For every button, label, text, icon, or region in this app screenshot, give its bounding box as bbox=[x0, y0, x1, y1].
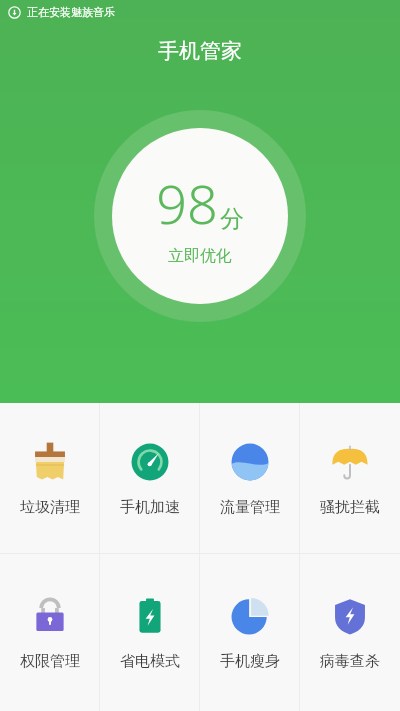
staticText: 骚扰拦截 bbox=[320, 498, 380, 517]
staticText: 垃圾清理 bbox=[20, 498, 80, 517]
staticText: 分 bbox=[220, 204, 244, 234]
staticText: 权限管理 bbox=[20, 652, 80, 671]
button[interactable]: 手机瘦身 bbox=[200, 554, 300, 711]
staticText: 流量管理 bbox=[220, 498, 280, 517]
button[interactable]: 流量管理 bbox=[200, 403, 300, 553]
staticText: 手机管家 bbox=[158, 38, 242, 64]
button[interactable]: 病毒查杀 bbox=[300, 554, 400, 711]
staticText: 手机瘦身 bbox=[220, 652, 280, 671]
staticText: 正在安装魅族音乐 bbox=[27, 5, 115, 19]
staticText: 98 bbox=[156, 166, 218, 240]
staticText: 立即优化 bbox=[168, 246, 232, 266]
button[interactable]: 权限管理 bbox=[0, 554, 100, 711]
button[interactable]: 省电模式 bbox=[100, 554, 200, 711]
button[interactable]: 98 bbox=[94, 110, 306, 322]
staticText: 病毒查杀 bbox=[320, 652, 380, 671]
other: Downloading bbox=[8, 6, 21, 19]
button[interactable]: 骚扰拦截 bbox=[300, 403, 400, 553]
staticText: 省电模式 bbox=[120, 652, 180, 671]
button[interactable]: 垃圾清理 bbox=[0, 403, 100, 553]
staticText: 手机加速 bbox=[120, 498, 180, 517]
button[interactable]: 手机加速 bbox=[100, 403, 200, 553]
